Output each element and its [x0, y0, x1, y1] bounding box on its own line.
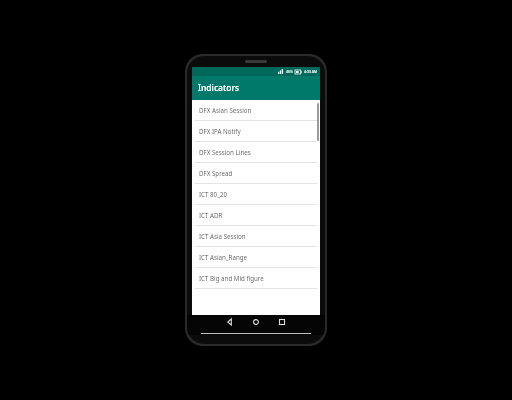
staticText: DFX Session Lines [199, 148, 251, 156]
staticText: DFX IPA Notify [199, 127, 241, 135]
staticText: ICT ADR [199, 211, 223, 219]
button[interactable]: ICT Big and Mid figure [192, 268, 320, 289]
button[interactable]: Back [219, 315, 241, 328]
staticText: ICT Big and Mid figure [199, 274, 264, 282]
button[interactable]: Recent apps [271, 315, 293, 328]
button[interactable]: DFX IPA Notify [192, 121, 320, 142]
staticText: 4:33 AM [304, 69, 318, 74]
button[interactable]: Home [241, 315, 271, 328]
staticText: ICT 80_20 [199, 190, 227, 198]
staticText: ICT Asia Session [199, 232, 246, 240]
button[interactable]: DFX Asian Session [192, 100, 320, 121]
staticText: ICT Asian_Range [199, 253, 248, 261]
button[interactable]: DFX Session Lines [192, 142, 320, 163]
button[interactable]: DFX Spread [192, 163, 320, 184]
staticText: Indicators [198, 82, 240, 94]
staticText: DFX Asian Session [199, 106, 252, 114]
button[interactable]: ICT ADR [192, 205, 320, 226]
button[interactable]: ICT Asian_Range [192, 247, 320, 268]
button[interactable]: ICT Asia Session [192, 226, 320, 247]
button[interactable]: ICT 80_20 [192, 184, 320, 205]
staticText: 46% [286, 69, 293, 74]
staticText: DFX Spread [199, 169, 233, 177]
